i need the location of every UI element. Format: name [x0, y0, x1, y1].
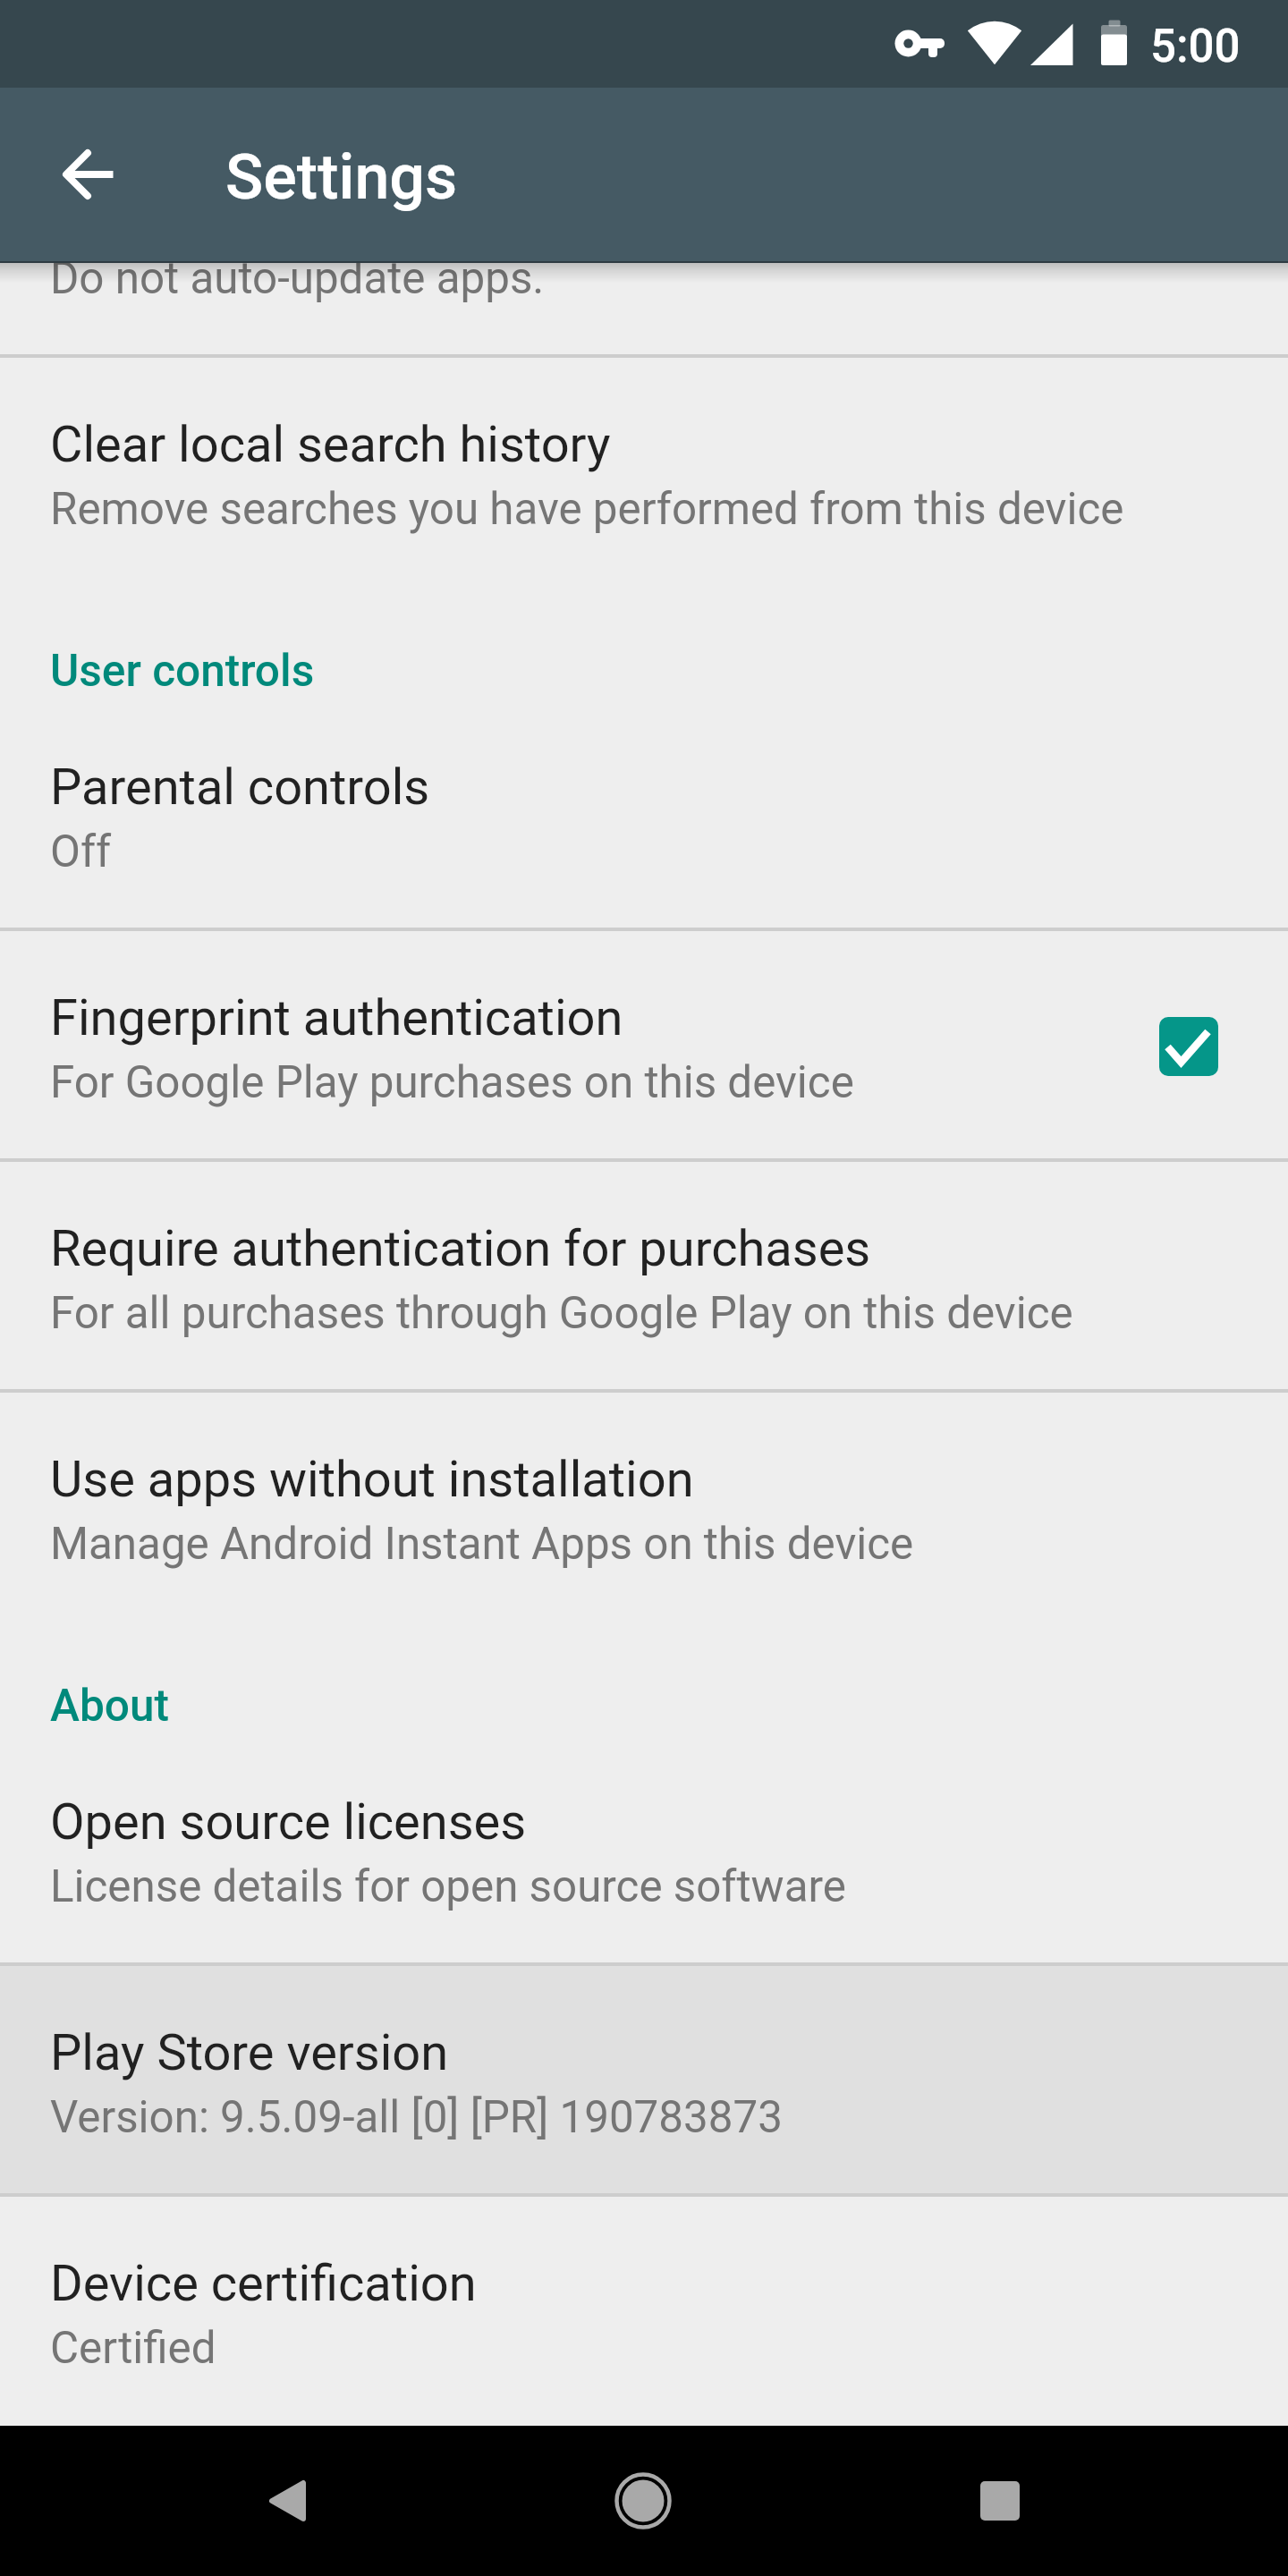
staticText: License details for open source software — [50, 1860, 846, 1912]
button[interactable]: Fingerprint authentication checkbox — [1159, 1017, 1218, 1076]
staticText: Fingerprint authentication — [50, 988, 623, 1047]
staticText: Device certification — [50, 2254, 477, 2313]
staticText: Remove searches you have performed from … — [50, 483, 1124, 535]
staticText: Parental controls — [50, 758, 430, 817]
button[interactable]: Play Store version — [0, 1966, 1288, 2197]
button[interactable]: Clear local search history — [0, 358, 1288, 589]
button[interactable]: Recent apps — [925, 2426, 1075, 2576]
button[interactable]: Home — [569, 2426, 719, 2576]
staticText: Version: 9.5.09-all [0] [PR] 190783873 — [50, 2091, 783, 2143]
staticText: Use apps without installation — [50, 1450, 694, 1509]
staticText: 5:00 — [1150, 20, 1241, 73]
staticText: Settings — [225, 140, 458, 214]
staticText: For Google Play purchases on this device — [50, 1056, 854, 1108]
button[interactable]: Navigate up — [0, 112, 125, 237]
button[interactable]: Device certification — [0, 2197, 1288, 2428]
staticText: Open source licenses — [50, 1792, 527, 1851]
button[interactable]: Open source licenses — [0, 1735, 1288, 1966]
staticText: Require authentication for purchases — [50, 1219, 871, 1278]
staticText: Certified — [50, 2322, 216, 2374]
button[interactable]: Fingerprint authentication — [0, 931, 1288, 1162]
staticText: Off — [50, 826, 112, 877]
button[interactable]: Back — [212, 2426, 362, 2576]
staticText: About — [50, 1680, 169, 1732]
staticText: For all purchases through Google Play on… — [50, 1287, 1073, 1339]
button[interactable]: Auto-update apps — [0, 127, 1288, 358]
staticText: Auto-update apps — [50, 184, 445, 243]
button[interactable]: Use apps without installation — [0, 1393, 1288, 1623]
staticText: Play Store version — [50, 2023, 449, 2082]
button[interactable]: Require authentication for purchases — [0, 1162, 1288, 1393]
staticText: User controls — [50, 645, 315, 697]
staticText: Manage Android Instant Apps on this devi… — [50, 1518, 914, 1570]
staticText: Clear local search history — [50, 415, 611, 474]
button[interactable]: Parental controls — [0, 700, 1288, 931]
staticText: Do not auto-update apps. — [50, 252, 545, 304]
